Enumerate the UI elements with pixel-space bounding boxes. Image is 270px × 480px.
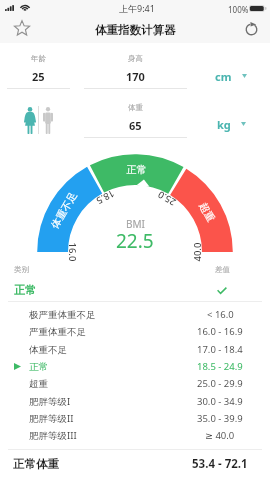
button[interactable]: 正常 [0, 358, 270, 375]
button[interactable]: 正常体重 [0, 449, 270, 479]
staticText: 极严重体重不足 [29, 309, 96, 321]
button[interactable]: cm [200, 66, 262, 86]
button[interactable]: 体重不足 [0, 341, 270, 358]
button[interactable]: 体重 [84, 103, 187, 138]
staticText: 18.5 - 24.9 [197, 360, 243, 373]
button[interactable]: Favorite [8, 17, 35, 43]
staticText: 差值 [215, 265, 230, 274]
staticText: cm [215, 69, 232, 84]
staticText: 体重不足 [29, 344, 67, 356]
button[interactable]: kg [200, 114, 262, 134]
staticText: 16.0 - 16.9 [197, 325, 243, 338]
button[interactable]: 极严重体重不足 [0, 306, 270, 323]
staticText: 肥胖等级II [29, 412, 74, 425]
staticText: < 16.0 [207, 308, 234, 321]
staticText: ≥ 40.0 [205, 429, 235, 442]
staticText: 30.0 - 34.9 [197, 395, 243, 408]
button[interactable]: Male [39, 105, 56, 135]
staticText: 正常体重 [13, 457, 59, 471]
button[interactable]: 严重体重不足 [0, 323, 270, 340]
staticText: 类别 [14, 265, 29, 274]
button[interactable]: 超重 [0, 375, 270, 392]
button[interactable]: 年龄 [7, 54, 70, 89]
staticText: 65 [129, 118, 142, 133]
staticText: 53.4 - 72.1 [192, 456, 248, 472]
button[interactable]: Refresh [235, 17, 262, 43]
staticText: 上午9:41 [119, 2, 155, 14]
staticText: 170 [126, 69, 145, 84]
staticText: kg [217, 117, 231, 132]
staticText: 正常 [29, 361, 48, 373]
staticText: 体重 [128, 103, 143, 112]
button[interactable]: 肥胖等级III [0, 427, 270, 444]
staticText: 身高 [128, 54, 143, 63]
staticText: 17.0 - 18.4 [197, 343, 243, 356]
button[interactable]: 肥胖等级I [0, 393, 270, 410]
staticText: 正常 [14, 283, 36, 297]
button[interactable]: 身高 [84, 54, 187, 89]
staticText: 体重指数计算器 [95, 23, 176, 37]
staticText: 年龄 [31, 54, 46, 63]
staticText: 35.0 - 39.9 [197, 412, 243, 425]
button[interactable]: 肥胖等级II [0, 410, 270, 427]
staticText: 严重体重不足 [29, 326, 86, 338]
staticText: 肥胖等级III [29, 429, 77, 442]
staticText: 超重 [29, 378, 48, 390]
button[interactable]: Female [21, 105, 38, 135]
staticText: 22.5 [116, 228, 154, 254]
staticText: 25.0 - 29.9 [197, 377, 243, 390]
staticText: 100% [228, 4, 249, 15]
staticText: 25 [32, 69, 45, 84]
staticText: 肥胖等级I [29, 395, 71, 408]
staticText: BMI [126, 217, 145, 231]
